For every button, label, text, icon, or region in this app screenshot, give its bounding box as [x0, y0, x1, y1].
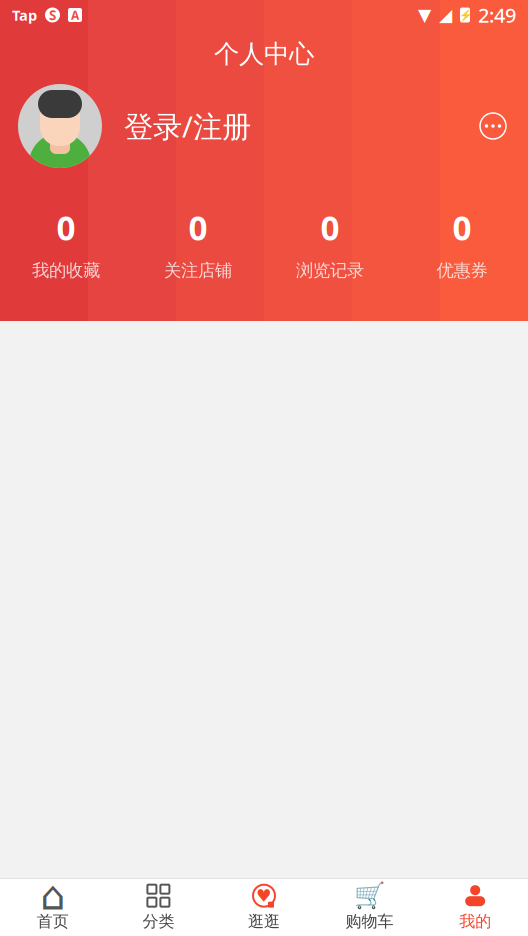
button[interactable]: 0 — [396, 205, 528, 281]
staticText: 0 — [452, 205, 471, 250]
staticText: 2:49 — [478, 2, 516, 28]
staticText: Tap — [12, 5, 37, 25]
staticText: ▼ — [418, 5, 431, 25]
button[interactable]: Messages — [476, 109, 510, 143]
button[interactable]: ♥ — [211, 878, 317, 936]
staticText: 0 — [56, 205, 75, 250]
button[interactable]: 🛒 — [317, 878, 422, 936]
staticText: 个人中心 — [214, 38, 314, 69]
button[interactable]: 0 — [264, 205, 396, 281]
staticText: 登录/注册 — [124, 106, 251, 145]
staticText: 逛逛 — [248, 912, 280, 931]
button[interactable]: ⌂ — [0, 878, 106, 936]
staticText: 浏览记录 — [296, 260, 364, 281]
staticText: ⚡ — [458, 9, 471, 21]
staticText: 分类 — [142, 912, 174, 931]
staticText: 0 — [188, 205, 207, 250]
staticText: A — [71, 7, 79, 23]
staticText: ◢ — [439, 5, 452, 25]
button[interactable]: 0 — [132, 205, 264, 281]
button[interactable]: 登录/注册 — [18, 84, 251, 168]
staticText: 🛒 — [354, 881, 386, 910]
staticText: ♥ — [256, 886, 272, 905]
button[interactable]: 分类 — [106, 878, 211, 936]
staticText: S — [49, 6, 56, 24]
staticText: 优惠券 — [436, 260, 487, 281]
staticText: 首页 — [37, 912, 69, 931]
staticText: ⌂ — [40, 873, 65, 918]
staticText: 我的收藏 — [32, 260, 100, 281]
staticText: 0 — [320, 205, 339, 250]
staticText: 我的 — [459, 912, 491, 931]
button[interactable]: 我的 — [422, 878, 528, 936]
staticText: 购物车 — [346, 912, 394, 931]
staticText: 关注店铺 — [164, 260, 232, 281]
button[interactable]: 0 — [0, 205, 132, 281]
